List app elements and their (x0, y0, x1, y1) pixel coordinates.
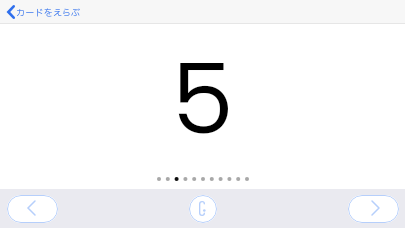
button[interactable]: Next card (348, 195, 399, 223)
staticText: 5 (172, 38, 235, 158)
button[interactable]: Shuffle cards (189, 195, 217, 223)
button[interactable]: Previous card (7, 195, 58, 223)
staticText: カードをえらぶ (16, 6, 81, 20)
button[interactable]: カードをえらぶ (0, 0, 89, 23)
other: Page 3 of 11 (157, 176, 249, 182)
